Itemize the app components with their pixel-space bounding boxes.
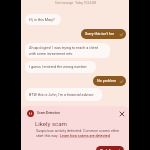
staticText: Ah apologies! I was trying to reach a cl… — [29, 46, 98, 56]
staticText: BTW this is John, I'm a financial adviso… — [29, 93, 94, 97]
staticText: Likely scam — [35, 120, 67, 127]
staticText: Hi, is this Mary? — [29, 18, 55, 22]
button[interactable]: Hi, is this Mary? — [25, 14, 61, 25]
button[interactable]: I guess I entered the wrong number — [25, 61, 96, 73]
button[interactable]: BTW this is John, I'm a financial adviso… — [25, 88, 102, 101]
button[interactable]: Ah apologies! I was trying to reach a cl… — [25, 43, 110, 58]
button[interactable]: Sorry this isn't her — [81, 29, 126, 39]
button[interactable]: No problem — [93, 76, 126, 86]
staticText: Text message · Today 10:24 AM — [55, 1, 96, 4]
staticText: Sorry this isn't her — [85, 32, 115, 36]
staticText: Suspicious activity detected. Common sca… — [36, 129, 120, 133]
staticText: No problem — [97, 79, 117, 83]
button[interactable]: Learn how scams are detected — [60, 134, 110, 138]
staticText: Block & report — [100, 149, 120, 150]
staticText: Scam Detection — [37, 111, 61, 115]
staticText: I guess I entered the wrong number — [29, 65, 87, 69]
button[interactable]: Block & report — [96, 146, 124, 150]
staticText: start this way. — [36, 134, 60, 138]
button[interactable]: Dismiss — [117, 109, 126, 118]
